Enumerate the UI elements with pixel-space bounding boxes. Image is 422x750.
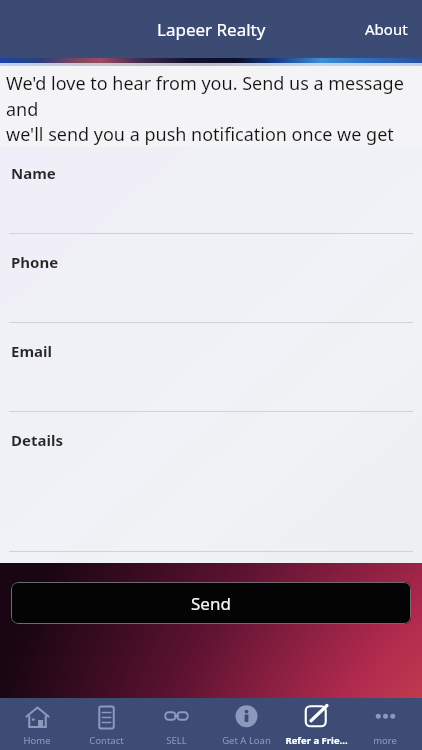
button[interactable]: About xyxy=(351,9,422,49)
staticText: Send xyxy=(191,592,231,615)
staticText: Refer a Frie... xyxy=(285,734,348,747)
button[interactable]: Name xyxy=(0,147,422,234)
staticText: Details xyxy=(11,430,63,450)
staticText: SELL xyxy=(166,734,187,747)
staticText: Home xyxy=(23,734,51,747)
button[interactable]: Get A Loan xyxy=(213,698,279,750)
button[interactable]: Phone xyxy=(0,236,422,323)
button[interactable]: SELL xyxy=(143,698,209,750)
staticText: Name xyxy=(11,163,56,183)
button[interactable]: Contact xyxy=(73,698,139,750)
staticText: Lapeer Realty xyxy=(157,18,266,41)
staticText: We'd love to hear from you. Send us a me… xyxy=(6,71,422,146)
button[interactable]: Home xyxy=(4,698,70,750)
staticText: Email xyxy=(11,341,52,361)
button[interactable]: Refer a Frie... xyxy=(283,698,349,750)
staticText: About xyxy=(365,19,408,39)
staticText: Get A Loan xyxy=(222,734,271,747)
staticText: Phone xyxy=(11,252,59,272)
button[interactable]: more xyxy=(352,698,418,750)
staticText: Contact xyxy=(89,734,124,747)
staticText: more xyxy=(373,734,397,747)
button[interactable]: Send xyxy=(11,582,411,624)
button[interactable]: Email xyxy=(0,325,422,412)
button[interactable]: Details xyxy=(0,414,422,552)
